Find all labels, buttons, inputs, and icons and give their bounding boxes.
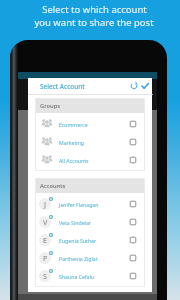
staticText: Accounts <box>40 182 66 190</box>
staticText: Parthenia Ziglar <box>59 255 98 262</box>
button[interactable]: All Accounts <box>35 151 145 169</box>
staticText: Veta Sindelar <box>59 219 91 226</box>
button[interactable]: Select <box>128 137 138 147</box>
button[interactable]: E <box>35 231 145 249</box>
button[interactable]: Select <box>128 199 138 209</box>
staticText: Select Account <box>40 82 85 91</box>
button[interactable]: Select <box>128 119 138 129</box>
staticText: Marketing <box>59 139 85 146</box>
staticText: S <box>43 271 47 281</box>
button[interactable]: Select <box>128 217 138 227</box>
button[interactable]: Select <box>128 271 138 281</box>
staticText: Groups <box>40 102 61 110</box>
staticText: All Accounts <box>59 157 89 164</box>
staticText: V <box>43 217 48 227</box>
button[interactable]: Select <box>128 253 138 263</box>
button[interactable]: Marketing <box>35 133 145 151</box>
staticText: Shauna Cefalu <box>59 273 95 280</box>
staticText: Select to which account <box>42 3 147 16</box>
button[interactable]: Ecommerce <box>35 115 145 133</box>
staticText: Eugenia Suther <box>59 237 97 244</box>
button[interactable]: Refresh <box>128 80 140 92</box>
button[interactable]: Select <box>128 235 138 245</box>
button[interactable]: V <box>35 213 145 231</box>
button[interactable]: S <box>35 267 145 285</box>
button[interactable]: Confirm selection <box>139 80 151 92</box>
staticText: Ecommerce <box>59 121 88 128</box>
staticText: E <box>43 235 47 245</box>
staticText: P <box>43 253 48 263</box>
staticText: J <box>44 199 46 209</box>
staticText: Jenifer Flanagan <box>59 201 99 208</box>
button[interactable]: J <box>35 195 145 213</box>
button[interactable]: Select <box>128 155 138 165</box>
staticText: you want to share the post <box>34 16 154 29</box>
button[interactable]: P <box>35 249 145 267</box>
